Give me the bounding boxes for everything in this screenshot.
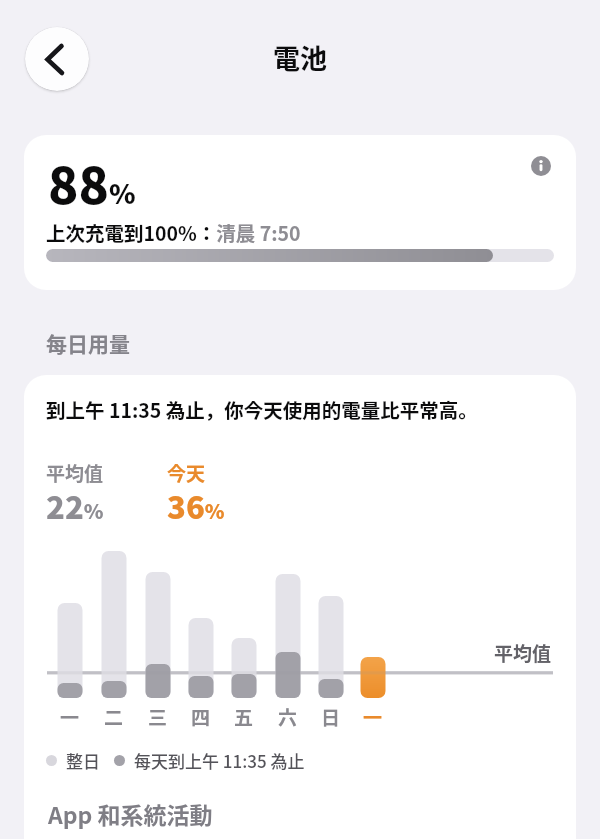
staticText: 電池 [273, 38, 327, 77]
staticText: 22% [46, 483, 104, 528]
staticText: 88% [48, 146, 136, 218]
staticText: 一 [363, 703, 383, 731]
staticText: 三 [148, 703, 168, 731]
staticText: 36% [167, 483, 225, 528]
staticText: 今天 [167, 459, 206, 487]
staticText: App 和系統活動 [48, 797, 213, 830]
staticText: 四 [191, 703, 211, 731]
staticText: 上次充電到100%：清晨 7:50 [46, 218, 301, 246]
staticText: 五 [234, 703, 254, 731]
staticText: 日 [321, 703, 341, 731]
button[interactable] [25, 27, 89, 91]
staticText: 每日用量 [46, 328, 130, 358]
staticText: 二 [104, 703, 124, 731]
button[interactable] [529, 154, 553, 178]
staticText: 整日 [66, 748, 100, 773]
staticText: 每天到上午 11:35 為止 [134, 748, 305, 773]
staticText: 一 [60, 703, 80, 731]
staticText: 平均值 [494, 639, 552, 667]
staticText: 到上午 11:35 為止，你今天使用的電量比平常高。 [46, 395, 478, 423]
staticText: 六 [278, 703, 298, 731]
staticText: 平均值 [46, 459, 104, 487]
